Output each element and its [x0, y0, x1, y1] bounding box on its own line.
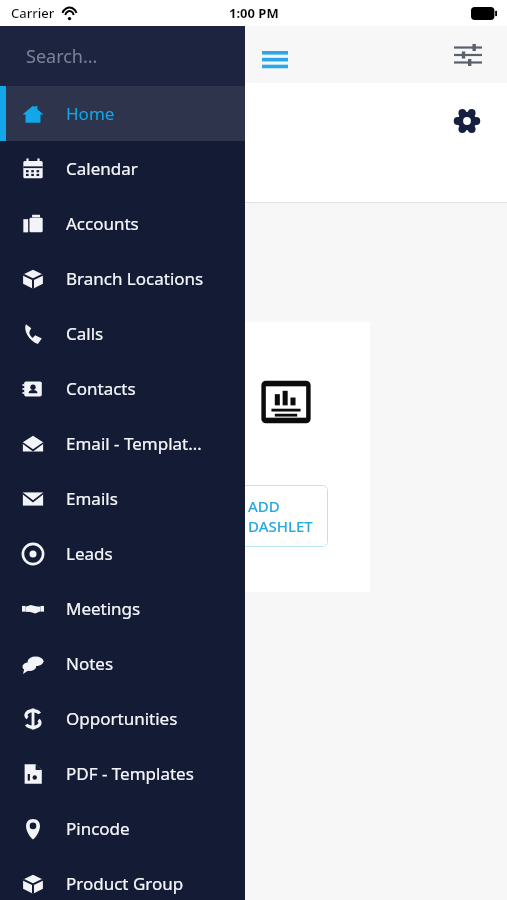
button[interactable]: Calls [0, 306, 245, 361]
button[interactable]: PDF - Templates [0, 746, 245, 801]
staticText: Contacts [66, 377, 136, 400]
button[interactable]: Filter [449, 36, 487, 74]
button[interactable]: Pincode [0, 801, 245, 856]
button[interactable]: Calendar [0, 141, 245, 196]
staticText: 1:00 PM [229, 4, 279, 22]
button[interactable]: Accounts [0, 196, 245, 251]
staticText: ADD DASHLET [248, 496, 313, 536]
staticText: Product Group [66, 872, 184, 895]
staticText: Calendar [66, 157, 138, 180]
button[interactable]: Leads [0, 526, 245, 581]
button[interactable]: Home [0, 86, 245, 141]
button[interactable]: Email - Templat… [0, 416, 245, 471]
staticText: Meetings [66, 597, 141, 620]
staticText: Email - Templat… [66, 432, 202, 455]
staticText: Search... [26, 44, 98, 69]
staticText: Branch Locations [66, 267, 204, 290]
staticText: Emails [66, 487, 118, 510]
button[interactable]: ADD DASHLET [232, 485, 328, 547]
button[interactable]: Search... [0, 26, 245, 86]
button[interactable]: Notes [0, 636, 245, 691]
staticText: Carrier [11, 4, 55, 22]
staticText: Calls [66, 322, 104, 345]
staticText: Leads [66, 542, 113, 565]
button[interactable]: Meetings [0, 581, 245, 636]
button[interactable]: Branch Locations [0, 251, 245, 306]
staticText: Accounts [66, 212, 139, 235]
staticText: Home [66, 102, 115, 125]
staticText: Notes [66, 652, 114, 675]
staticText: PDF - Templates [66, 762, 194, 785]
button[interactable]: Contacts [0, 361, 245, 416]
button[interactable]: Opportunities [0, 691, 245, 746]
button[interactable]: Emails [0, 471, 245, 526]
button[interactable]: Settings [449, 103, 485, 139]
staticText: Opportunities [66, 707, 178, 730]
staticText: Pincode [66, 817, 130, 840]
button[interactable]: Product Group [0, 856, 245, 900]
button[interactable]: Menu [255, 40, 295, 80]
